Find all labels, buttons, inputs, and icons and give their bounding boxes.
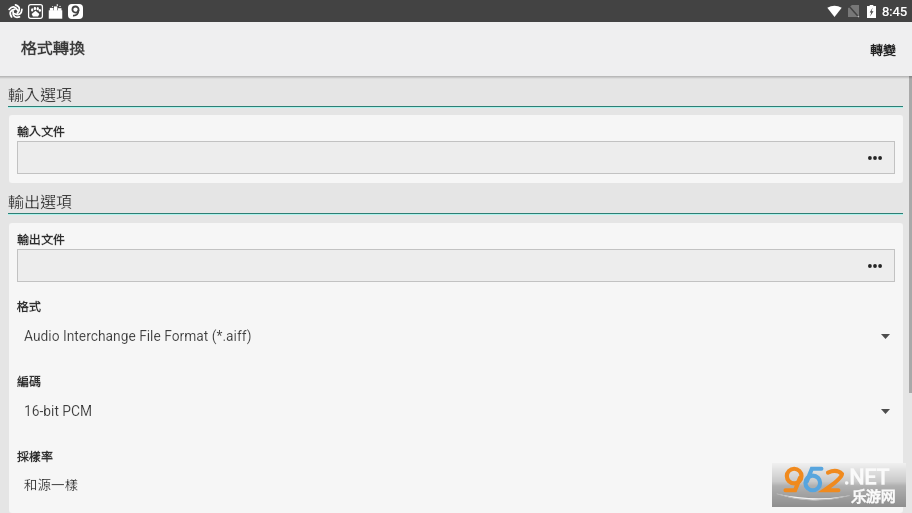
staticText: 採樣率 bbox=[17, 447, 54, 464]
staticText: 輸入選項 bbox=[8, 82, 73, 105]
other: App notification bbox=[68, 4, 83, 19]
other: Download notification bbox=[48, 4, 63, 19]
button[interactable]: 16-bit PCM bbox=[9, 400, 903, 422]
button[interactable]: 輸出選項 bbox=[8, 192, 903, 215]
staticText: 16-bit PCM bbox=[24, 403, 93, 419]
staticText: 輸出文件 bbox=[17, 230, 66, 247]
other: Baidu notification bbox=[28, 4, 43, 19]
staticText: 編碼 bbox=[17, 372, 42, 389]
button[interactable]: Browse output file bbox=[17, 249, 895, 282]
staticText: 和源一樣 bbox=[24, 474, 78, 494]
button[interactable]: 轉變 bbox=[855, 28, 912, 71]
staticText: 格式轉換 bbox=[21, 35, 86, 58]
button[interactable]: Audio Interchange File Format (*.aiff) bbox=[9, 325, 903, 347]
other: 962.NET watermark bbox=[772, 463, 906, 507]
staticText: 8:45 bbox=[882, 4, 908, 19]
button[interactable]: 和源一樣 bbox=[9, 474, 903, 496]
button[interactable]: Browse input file bbox=[17, 141, 895, 174]
other: Battery charging bbox=[867, 5, 876, 18]
staticText: .NET bbox=[844, 465, 890, 490]
staticText: 輸出選項 bbox=[8, 189, 73, 212]
staticText: 轉變 bbox=[870, 40, 897, 59]
staticText: 輸入文件 bbox=[17, 122, 66, 139]
staticText: 乐游网 bbox=[851, 485, 897, 507]
button[interactable]: 輸入選項 bbox=[8, 85, 903, 108]
other: Sync bbox=[8, 4, 23, 19]
staticText: 格式 bbox=[17, 297, 42, 314]
other: Wi-Fi bbox=[827, 5, 842, 17]
other: No SIM card bbox=[848, 5, 859, 17]
staticText: Audio Interchange File Format (*.aiff) bbox=[24, 328, 252, 344]
